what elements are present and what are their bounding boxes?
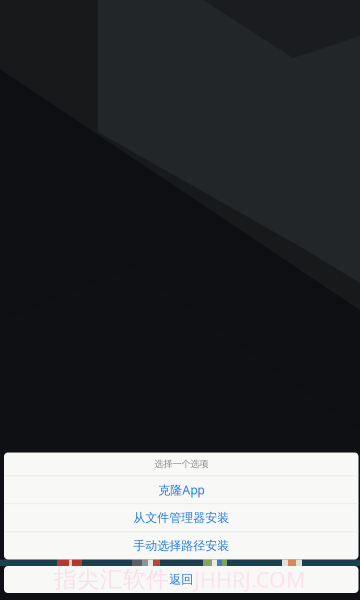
staticText: 返回 xyxy=(169,572,193,587)
staticText: 选择一个选项 xyxy=(154,458,208,470)
staticText: 指尖汇软件 xyxy=(54,566,169,593)
button[interactable]: 从文件管理器安装 xyxy=(4,504,358,531)
staticText: 从文件管理器安装 xyxy=(133,510,229,525)
button[interactable]: 手动选择路径安装 xyxy=(4,532,358,559)
staticText: 克隆App xyxy=(158,482,204,498)
button[interactable]: 指尖汇软件 xyxy=(4,566,358,593)
staticText: 手动选择路径安装 xyxy=(133,538,229,553)
staticText: JHHRJ.COM xyxy=(194,565,305,594)
button[interactable]: 克隆App xyxy=(4,476,358,503)
